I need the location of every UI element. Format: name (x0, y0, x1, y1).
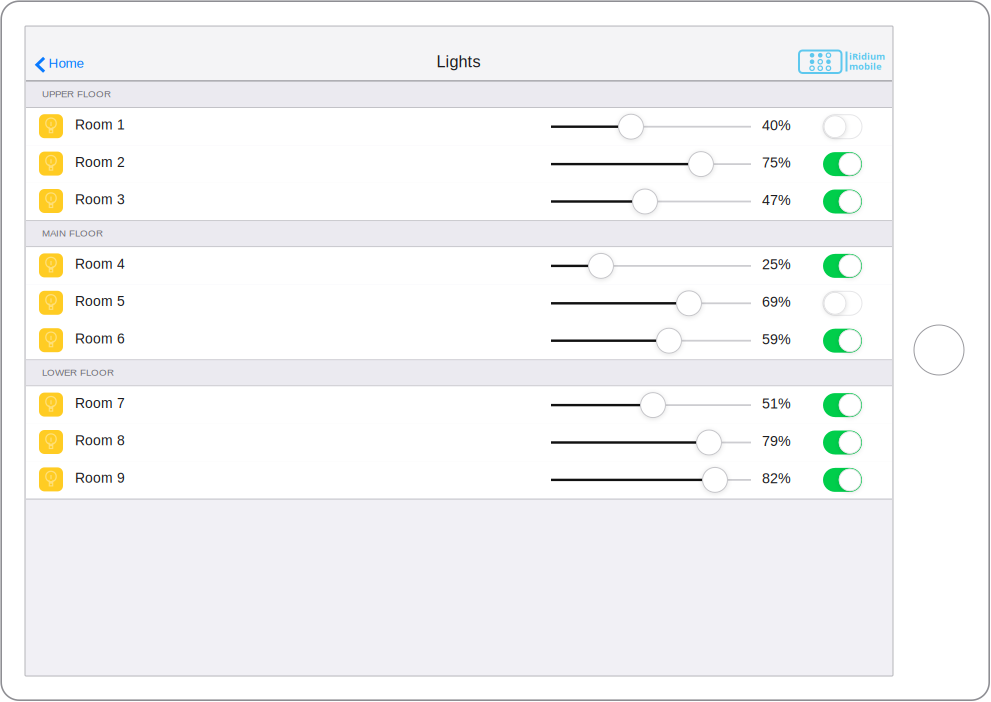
staticText: Room 9 (75, 470, 125, 486)
button[interactable]: Turn light off (823, 393, 862, 417)
staticText: 75% (762, 155, 791, 170)
button[interactable]: Room 2 (26, 145, 892, 183)
button[interactable]: Room 5 (26, 285, 892, 322)
button[interactable]: Turn light off (823, 430, 862, 454)
staticText: 79% (762, 433, 791, 449)
button[interactable]: Turn light off (823, 189, 862, 213)
button[interactable]: Room 9 (26, 461, 892, 499)
button[interactable]: Turn light on (823, 291, 862, 315)
staticText: 82% (762, 470, 791, 486)
staticText: 47% (762, 192, 791, 208)
staticText: Room 3 (75, 192, 125, 207)
button[interactable]: Room 6 (26, 322, 892, 359)
button[interactable]: Turn light off (823, 329, 862, 353)
button[interactable]: Turn light off (823, 468, 862, 492)
button[interactable]: Room 1 (26, 108, 892, 145)
button[interactable]: iRidium mobile (799, 50, 885, 75)
staticText: Room 2 (75, 154, 125, 170)
staticText: MAIN FLOOR (42, 228, 103, 239)
staticText: 25% (762, 256, 791, 272)
button[interactable]: Turn light on (823, 115, 862, 139)
staticText: LOWER FLOOR (42, 367, 114, 378)
button[interactable]: Room 7 (26, 386, 892, 424)
staticText: Room 1 (75, 117, 125, 132)
staticText: mobile (849, 60, 882, 72)
staticText: iRidium (849, 50, 885, 62)
staticText: 40% (762, 117, 791, 133)
staticText: 69% (762, 294, 791, 310)
staticText: 51% (762, 396, 791, 411)
staticText: UPPER FLOOR (42, 89, 111, 99)
staticText: Room 5 (75, 294, 125, 309)
staticText: Lights (436, 52, 480, 71)
staticText: Room 7 (75, 395, 125, 411)
button[interactable]: Turn light off (823, 254, 862, 278)
staticText: Room 8 (75, 433, 125, 448)
button[interactable]: Room 8 (26, 424, 892, 461)
button[interactable]: Home (26, 27, 92, 80)
staticText: Room 4 (75, 256, 125, 272)
button[interactable]: Room 3 (26, 183, 892, 220)
staticText: 59% (762, 331, 791, 347)
staticText: Home (48, 55, 83, 70)
button[interactable]: Room 4 (26, 247, 892, 285)
staticText: Room 6 (75, 331, 125, 346)
button[interactable]: Turn light off (823, 152, 862, 176)
